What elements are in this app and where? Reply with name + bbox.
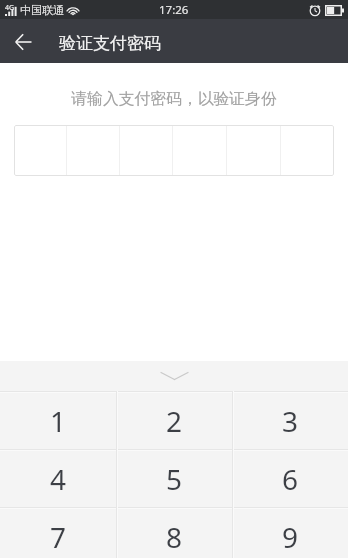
- button[interactable]: 7: [0, 507, 116, 558]
- staticText: 1: [50, 402, 67, 440]
- staticText: 9: [282, 518, 299, 556]
- button[interactable]: 4: [0, 449, 116, 507]
- button[interactable]: 9: [232, 507, 348, 558]
- button[interactable]: 1: [0, 391, 116, 449]
- staticText: 2: [166, 402, 183, 440]
- button[interactable]: 8: [116, 507, 232, 558]
- staticText: 请输入支付密码，以验证身份: [0, 89, 348, 109]
- staticText: 中国联通: [20, 3, 64, 17]
- button[interactable]: [14, 125, 334, 176]
- button[interactable]: 5: [116, 449, 232, 507]
- staticText: 验证支付密码: [59, 33, 161, 54]
- button[interactable]: 3: [232, 391, 348, 449]
- staticText: 5: [166, 460, 183, 498]
- staticText: 8: [166, 518, 183, 556]
- staticText: 4G: [5, 3, 15, 13]
- button[interactable]: Back: [0, 19, 46, 63]
- button[interactable]: 2: [116, 391, 232, 449]
- staticText: 17:26: [159, 2, 189, 18]
- staticText: 4: [50, 460, 67, 498]
- staticText: 7: [50, 518, 67, 556]
- staticText: 6: [282, 460, 299, 498]
- button[interactable]: 6: [232, 449, 348, 507]
- staticText: 3: [282, 402, 299, 440]
